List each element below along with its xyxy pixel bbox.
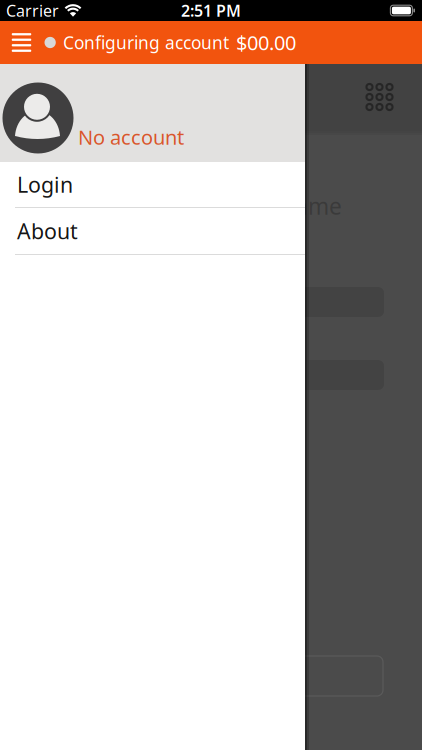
staticText: 2:51 PM	[181, 0, 241, 21]
staticText: $00.00	[236, 29, 296, 56]
button[interactable]: Login	[0, 162, 305, 207]
button[interactable]: About	[0, 208, 305, 254]
staticText: Username	[231, 191, 342, 221]
staticText: No account	[78, 124, 184, 150]
staticText: Carrier	[6, 0, 59, 21]
button[interactable]: $00.00	[0, 21, 422, 64]
button[interactable]: Apps	[364, 82, 394, 112]
staticText: Configuring account	[63, 31, 229, 54]
button[interactable]: Menu	[0, 21, 43, 64]
staticText: Login	[17, 170, 73, 199]
staticText: About	[17, 217, 78, 245]
